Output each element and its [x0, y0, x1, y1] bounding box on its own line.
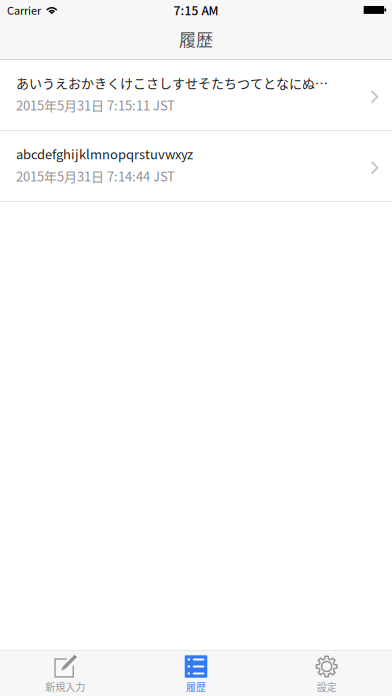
- staticText: 2015年5月31日 7:14:44 JST: [16, 166, 175, 185]
- button[interactable]: 設定: [261, 650, 392, 696]
- staticText: 設定: [317, 679, 337, 694]
- staticText: Carrier: [7, 2, 41, 18]
- staticText: 新規入力: [45, 679, 85, 694]
- button[interactable]: abcdefghijklmnopqrstuvwxyz: [0, 131, 392, 202]
- staticText: 履歴: [186, 679, 206, 694]
- button[interactable]: 履歴: [131, 650, 261, 696]
- staticText: 7:15 AM: [173, 1, 218, 19]
- staticText: abcdefghijklmnopqrstuvwxyz: [16, 144, 193, 163]
- staticText: あいうえおかきくけこさしすせそたちつてとなにぬ…: [16, 73, 328, 92]
- button[interactable]: あいうえおかきくけこさしすせそたちつてとなにぬ…: [0, 60, 392, 131]
- button[interactable]: 新規入力: [0, 650, 131, 696]
- staticText: 履歴: [179, 26, 213, 51]
- staticText: 2015年5月31日 7:15:11 JST: [16, 95, 175, 114]
